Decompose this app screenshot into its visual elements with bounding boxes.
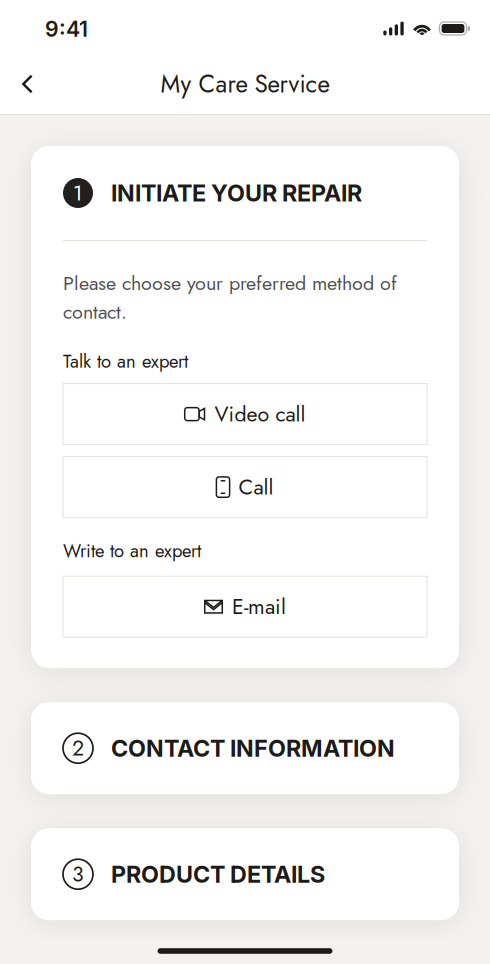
button[interactable]: 2 [31,702,459,794]
staticText: Call [239,472,274,502]
staticText: 1 [73,178,83,208]
staticText: PRODUCT DETAILS [111,860,325,888]
staticText: Talk to an expert [63,348,188,375]
staticText: My Care Service [160,66,329,102]
staticText: 3 [72,859,84,890]
staticText: 2 [72,733,84,764]
staticText: Please choose your preferred method of c… [63,269,397,326]
staticText: 9:41 [45,16,88,42]
button[interactable]: 3 [31,828,459,920]
button[interactable]: Back [0,61,51,107]
button[interactable]: E-mail [63,576,427,637]
button[interactable]: Call [63,457,427,518]
staticText: INITIATE YOUR REPAIR [111,179,362,207]
button[interactable]: Video call [63,384,427,445]
staticText: CONTACT INFORMATION [111,734,395,762]
staticText: Write to an expert [63,538,201,564]
staticText: E-mail [232,591,286,622]
staticText: Video call [214,399,305,429]
